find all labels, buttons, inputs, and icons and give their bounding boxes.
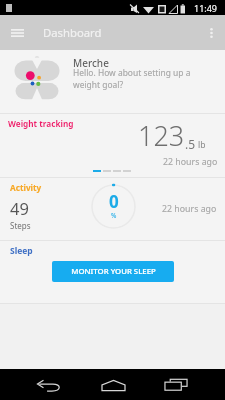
button[interactable]: MONITOR YOUR SLEEP: [52, 261, 174, 282]
staticText: .5: [185, 136, 196, 152]
staticText: Steps: [10, 220, 31, 231]
staticText: Weight tracking: [8, 118, 74, 129]
button[interactable]: Activity: [0, 178, 225, 240]
staticText: 22 hours ago: [163, 156, 218, 168]
staticText: MONITOR YOUR SLEEP: [71, 266, 156, 277]
staticText: 22 hours ago: [162, 203, 217, 215]
staticText: 0: [109, 190, 119, 213]
staticText: Sleep: [10, 245, 33, 257]
button[interactable]: Merche: [0, 50, 225, 113]
staticText: 49: [10, 197, 29, 219]
staticText: Merche: [73, 56, 109, 70]
button[interactable]: Weight tracking: [0, 114, 225, 177]
staticText: 11:49: [194, 2, 218, 14]
button[interactable]: Open navigation drawer: [0, 15, 35, 50]
staticText: 123: [138, 117, 185, 154]
staticText: lb: [198, 139, 206, 151]
staticText: Activity: [10, 182, 42, 193]
button[interactable]: More options: [197, 15, 225, 50]
staticText: Hello. How about setting up a weight goa…: [73, 67, 199, 91]
staticText: %: [111, 211, 117, 220]
button[interactable]: Back: [25, 369, 73, 400]
staticText: Dashboard: [43, 25, 102, 40]
button[interactable]: Home: [89, 369, 137, 400]
button[interactable]: Recent apps: [152, 369, 200, 400]
